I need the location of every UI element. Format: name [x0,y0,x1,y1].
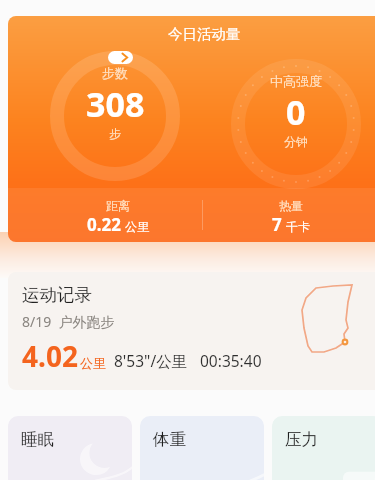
button[interactable]: 热量 [229,198,353,242]
staticText: 8/19 户外跑步 [22,312,115,331]
staticText: 公里 [80,355,106,371]
staticText: 距离 [106,198,130,213]
staticText: 0.22 [87,213,121,236]
staticText: 千卡 [286,219,310,234]
staticText: 308 [86,81,145,127]
staticText: 8'53"/公里 [114,350,188,371]
button[interactable]: 运动记录 [8,272,375,390]
button[interactable]: 压力 [272,416,375,480]
button[interactable]: Expand [108,51,133,64]
staticText: 4.02 [22,337,78,375]
button[interactable]: 体重 [140,416,264,480]
button[interactable]: 距离 [56,198,180,242]
button[interactable]: 睡眠 [8,416,132,480]
staticText: 热量 [279,198,303,213]
staticText: 睡眠 [21,429,54,450]
staticText: 步数 [102,65,128,81]
staticText: 运动记录 [22,284,92,306]
staticText: 分钟 [284,134,308,149]
staticText: 压力 [285,429,318,450]
staticText: 00:35:40 [200,350,262,371]
staticText: 步 [109,126,121,141]
staticText: 7 [272,213,282,236]
staticText: 体重 [153,429,186,450]
staticText: 公里 [125,219,149,234]
button[interactable]: 今日活动量 [8,16,375,242]
staticText: 中高强度 [270,73,322,89]
staticText: 今日活动量 [168,25,241,43]
staticText: 0 [286,89,306,135]
